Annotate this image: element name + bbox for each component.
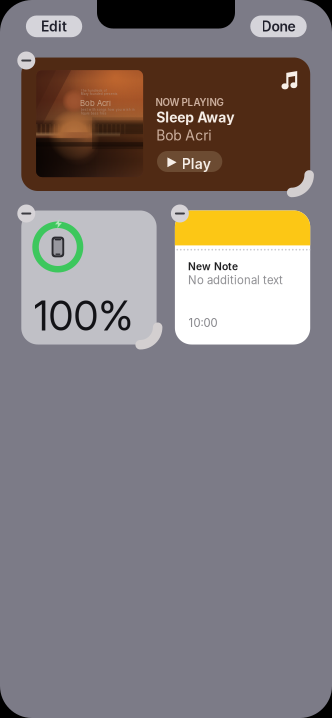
button[interactable]: Done <box>250 15 307 37</box>
button[interactable]: Remove widget <box>171 204 189 222</box>
staticText: 100% <box>34 291 134 340</box>
staticText: Play <box>182 155 211 172</box>
button[interactable]: Remove widget <box>17 204 35 222</box>
staticText: best with songs how you wish in figure b… <box>81 108 135 115</box>
button[interactable]: 100% <box>21 210 157 344</box>
staticText: Edit <box>41 18 67 35</box>
staticText: Bob Acri <box>156 127 211 144</box>
staticText: 10:00 <box>188 316 217 330</box>
button[interactable]: New Note <box>175 210 310 344</box>
staticText: Sleep Away <box>156 109 234 126</box>
button[interactable]: The hundreds of <box>21 57 310 191</box>
button[interactable]: Edit <box>26 15 82 37</box>
staticText: No additional text <box>188 273 283 287</box>
staticText: Bob Acri <box>80 98 111 108</box>
staticText: Mary founded presents <box>81 92 118 96</box>
button[interactable]: Remove widget <box>17 51 35 69</box>
staticText: NOW PLAYING <box>155 96 223 108</box>
button[interactable]: Resize widget <box>287 170 314 197</box>
staticText: The hundreds of <box>81 89 107 93</box>
button[interactable]: Resize widget <box>135 322 162 349</box>
staticText: Done <box>261 18 295 35</box>
staticText: New Note <box>188 260 238 273</box>
